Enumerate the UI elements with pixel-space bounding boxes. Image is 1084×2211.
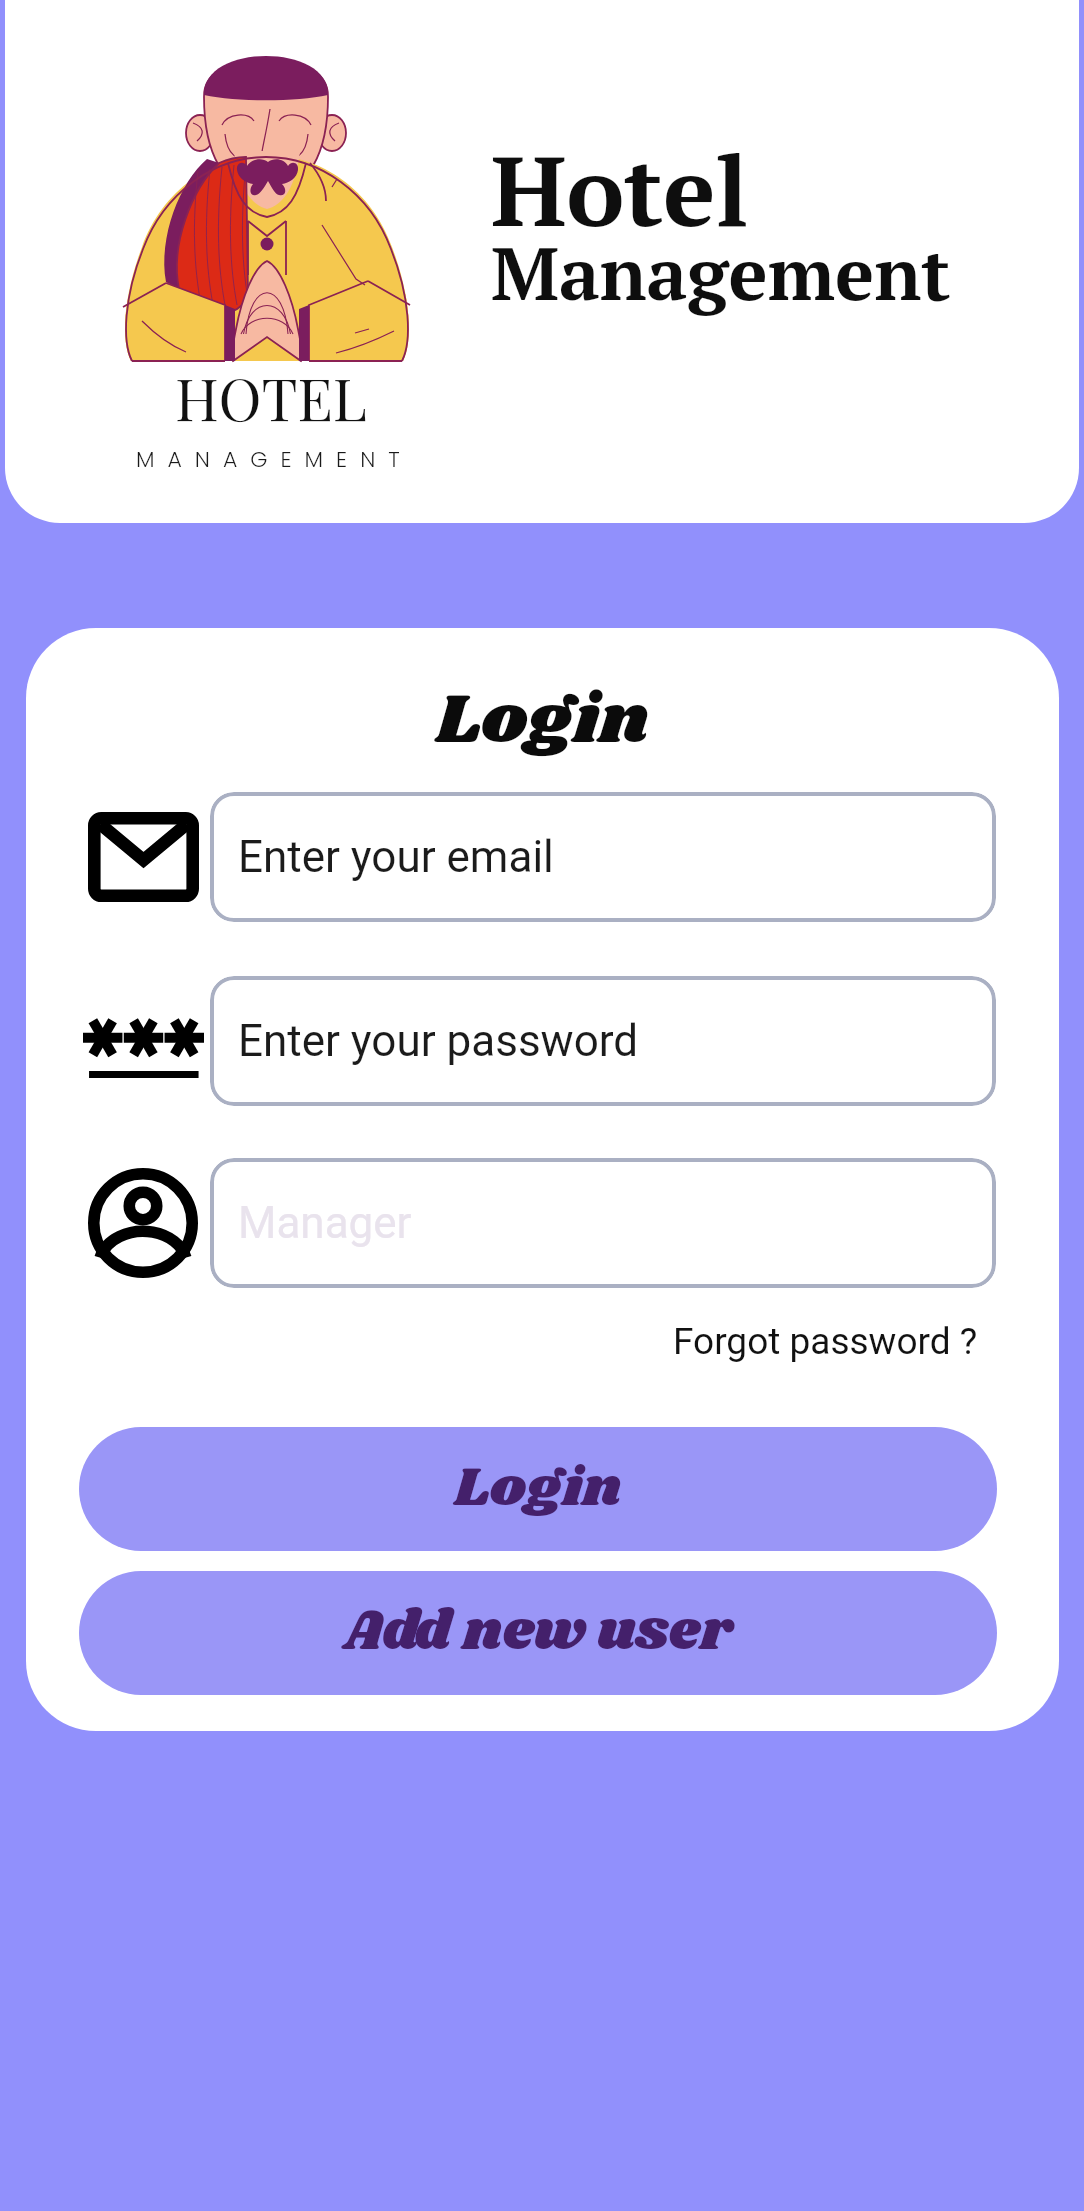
other: Password bbox=[83, 1015, 204, 1085]
staticText: Management bbox=[491, 224, 951, 321]
other: Email bbox=[88, 812, 199, 902]
staticText: Hotel bbox=[491, 124, 749, 254]
staticText: Enter your email bbox=[238, 831, 554, 883]
staticText: MANAGEMENT bbox=[136, 444, 413, 475]
staticText: Manager bbox=[238, 1197, 412, 1249]
staticText: Login bbox=[436, 670, 650, 772]
button[interactable]: Login bbox=[79, 1427, 997, 1551]
other: Account bbox=[88, 1168, 198, 1278]
staticText: Enter your password bbox=[238, 1015, 639, 1067]
staticText: Add new user bbox=[343, 1592, 733, 1674]
staticText: Forgot password ? bbox=[673, 1320, 978, 1363]
button[interactable]: Manager bbox=[210, 1158, 996, 1288]
button[interactable]: Add new user bbox=[79, 1571, 997, 1695]
button[interactable]: Forgot password ? bbox=[616, 1310, 978, 1372]
staticText: Login bbox=[454, 1449, 622, 1529]
button[interactable]: Enter your email bbox=[210, 792, 996, 922]
button[interactable]: Enter your password bbox=[210, 976, 996, 1106]
staticText: HOTEL bbox=[175, 358, 367, 435]
